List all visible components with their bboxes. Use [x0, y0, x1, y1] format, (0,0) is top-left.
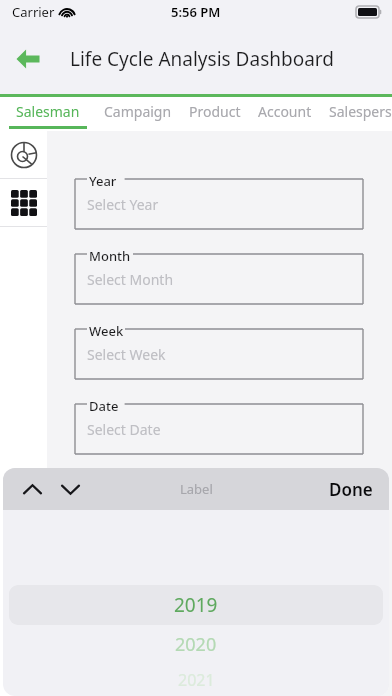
staticText: Select Year [87, 195, 159, 214]
staticText: Date [89, 397, 119, 415]
staticText: Week [89, 322, 124, 340]
staticText: 2021 [178, 669, 215, 691]
button[interactable]: Product [189, 97, 241, 131]
staticText: Salesman [16, 102, 80, 121]
staticText: Account [258, 102, 312, 121]
button[interactable]: Done [313, 470, 389, 509]
staticText: Done [329, 478, 373, 501]
button[interactable]: Previous [17, 474, 47, 504]
staticText: 2019 [174, 592, 218, 618]
staticText: Month [89, 247, 131, 265]
button[interactable]: Salesperson [329, 97, 392, 131]
button[interactable]: Salesman [9, 97, 87, 131]
button[interactable]: Year [75, 179, 363, 229]
staticText: Life Cycle Analysis Dashboard [70, 46, 334, 72]
staticText: 5:56 PM [171, 3, 221, 21]
button[interactable]: Next [55, 474, 85, 504]
button[interactable]: Campaign [104, 97, 172, 131]
button[interactable]: Week [75, 329, 363, 379]
button[interactable]: Date [75, 404, 363, 454]
button[interactable]: Grid view [0, 179, 47, 226]
staticText: Select Date [87, 420, 161, 439]
button[interactable]: Account [258, 97, 312, 131]
button[interactable]: Back [6, 37, 50, 81]
staticText: Campaign [104, 102, 172, 121]
button[interactable]: 2019 [3, 585, 389, 625]
staticText: Product [189, 102, 241, 121]
staticText: Salesperson [329, 102, 392, 121]
button[interactable]: 2020 [3, 625, 389, 663]
staticText: Select Month [87, 270, 174, 289]
button[interactable]: Month [75, 254, 363, 304]
staticText: 2020 [175, 632, 217, 657]
staticText: Select Week [87, 345, 166, 364]
staticText: Label [180, 480, 213, 498]
staticText: Carrier [12, 3, 55, 21]
staticText: Year [89, 172, 117, 190]
button[interactable]: Chart view [0, 131, 47, 178]
